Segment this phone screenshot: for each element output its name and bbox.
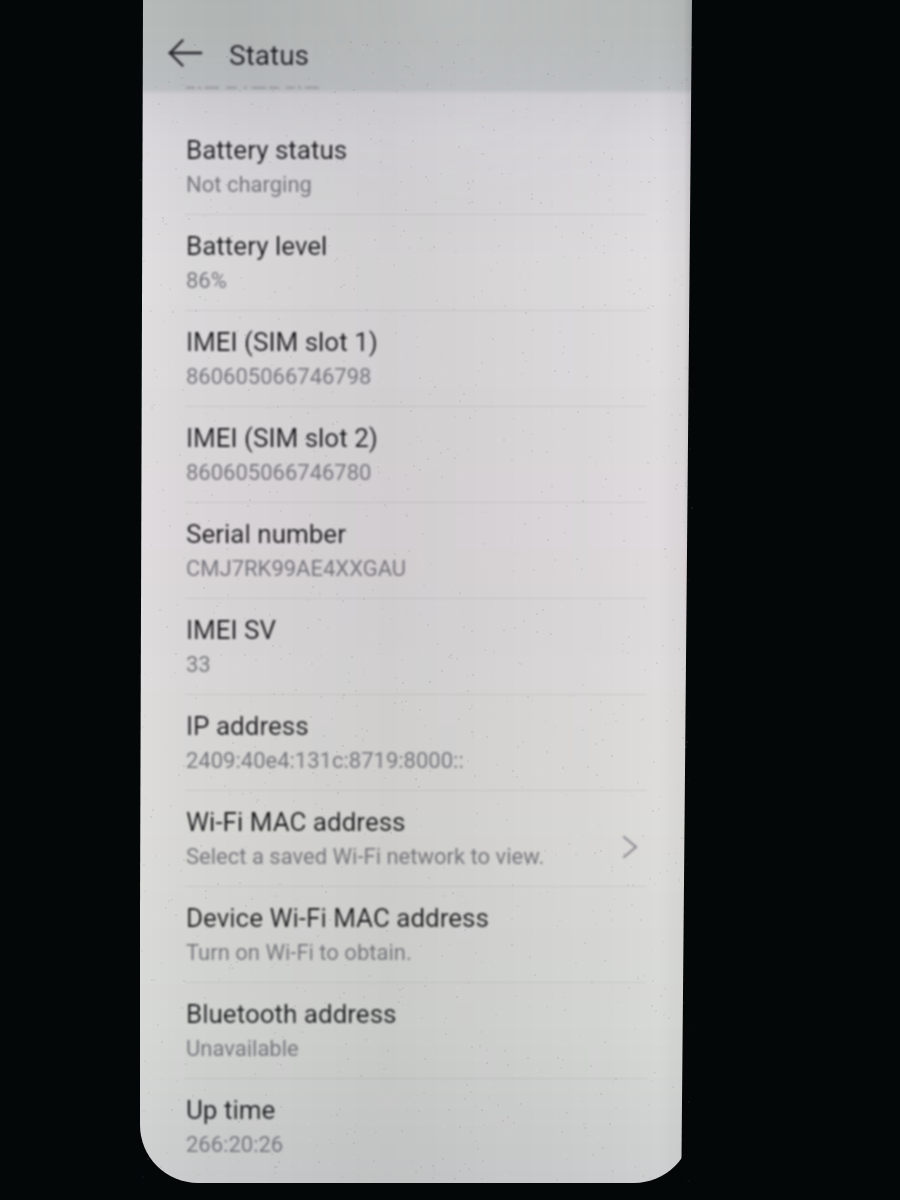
staticText: 2409:40e4:131c:8719:8000:: — [186, 748, 464, 774]
staticText: Select a saved Wi-Fi network to view. — [186, 844, 545, 870]
staticText: IMEI (SIM slot 2) — [186, 423, 378, 453]
staticText: Battery level — [186, 231, 328, 261]
staticText: IMEI SV — [186, 615, 277, 645]
staticText: Device Wi-Fi MAC address — [186, 903, 489, 933]
button[interactable]: IP address — [140, 695, 692, 790]
staticText: IP address — [186, 711, 309, 741]
staticText: 860605066746798 — [186, 364, 372, 390]
staticText: 33 — [186, 652, 211, 678]
button[interactable]: Serial number — [140, 503, 692, 598]
staticText: CMJ7RK99AE4XXGAU — [186, 556, 407, 582]
button[interactable]: Device Wi-Fi MAC address — [140, 887, 692, 982]
button[interactable]: IMEI (SIM slot 1) — [140, 311, 692, 406]
staticText: Turn on Wi-Fi to obtain. — [186, 940, 412, 966]
button[interactable]: Battery level — [140, 215, 692, 310]
staticText: Status — [229, 39, 310, 72]
staticText: Not charging — [186, 172, 312, 198]
staticText: Wi-Fi MAC address — [186, 807, 406, 837]
staticText: IMEI (SIM slot 1) — [186, 327, 378, 357]
button[interactable]: Back — [157, 25, 213, 81]
button[interactable]: IMEI (SIM slot 2) — [140, 407, 692, 502]
staticText: Unavailable — [186, 1036, 299, 1062]
staticText: Up time — [186, 1095, 276, 1125]
staticText: Serial number — [186, 519, 346, 549]
button[interactable]: IMEI SV — [140, 599, 692, 694]
staticText: 860605066746780 — [186, 460, 372, 486]
staticText: Battery status — [186, 135, 348, 165]
button[interactable]: Bluetooth address — [140, 983, 692, 1078]
staticText: 266:20:26 — [186, 1132, 284, 1158]
staticText: 86% — [186, 268, 227, 294]
button[interactable]: Battery status — [140, 119, 692, 214]
button[interactable]: Wi-Fi MAC address — [140, 791, 692, 886]
button[interactable]: Up time — [140, 1079, 692, 1174]
staticText: Bluetooth address — [186, 999, 397, 1029]
